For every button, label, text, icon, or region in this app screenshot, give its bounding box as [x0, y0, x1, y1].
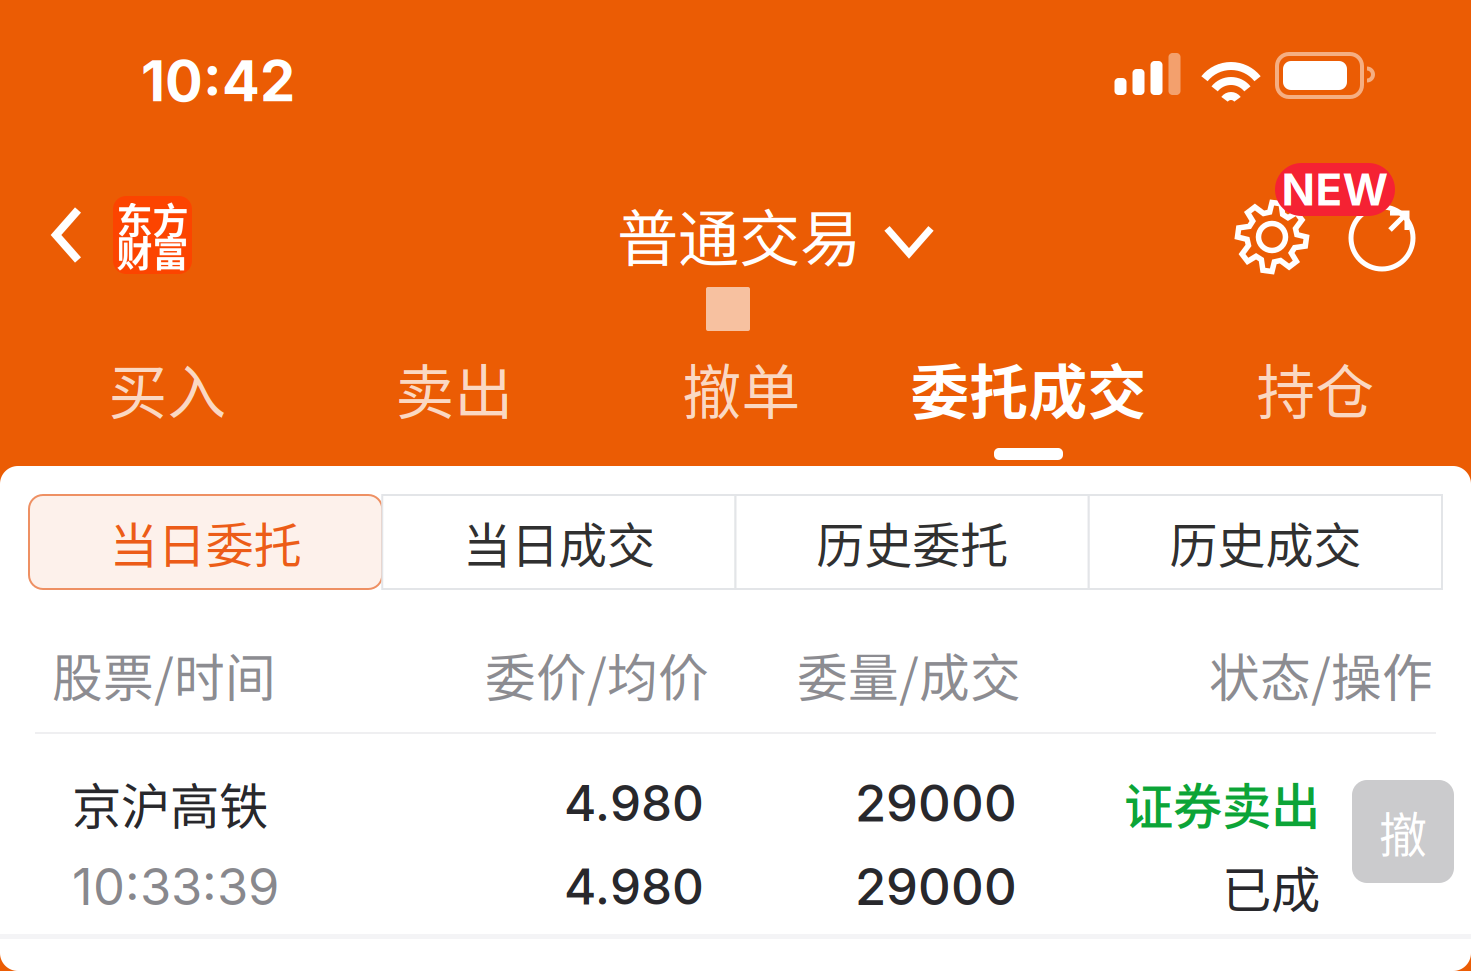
staticText: 京沪高铁	[72, 767, 268, 839]
staticText: 方	[152, 192, 188, 244]
staticText: 历史成交	[1169, 507, 1361, 577]
button[interactable]: New features	[1275, 130, 1417, 275]
button[interactable]: 持仓	[1172, 335, 1459, 466]
staticText: 29000	[855, 856, 1017, 917]
staticText: 证券卖出	[1124, 767, 1320, 839]
button[interactable]: 当日成交	[382, 495, 735, 589]
button[interactable]: Settings	[1235, 130, 1309, 282]
staticText: 卖出	[395, 346, 513, 431]
button[interactable]: 撤单	[598, 335, 885, 466]
staticText: NEW	[1281, 163, 1388, 216]
button[interactable]: 京沪高铁	[0, 734, 1471, 934]
staticText: 委量/成交	[797, 638, 1021, 711]
staticText: 撤	[1379, 797, 1427, 866]
button[interactable]: 委托成交	[885, 335, 1172, 466]
staticText: 4.980	[564, 857, 704, 916]
staticText: 东	[116, 192, 152, 244]
staticText: 已成	[1222, 851, 1320, 922]
staticText: 财	[116, 225, 152, 277]
button[interactable]: 卖出	[311, 335, 598, 466]
staticText: 买入	[108, 346, 226, 431]
staticText: 4.980	[564, 773, 704, 833]
staticText: 状态/操作	[1209, 638, 1433, 711]
staticText: 10:33:39	[72, 856, 279, 917]
staticText: 当日成交	[463, 507, 655, 577]
staticText: 10:42	[141, 47, 295, 115]
staticText: 当日委托	[110, 507, 302, 577]
staticText: 富	[152, 225, 188, 277]
staticText: 委托成交	[910, 346, 1146, 431]
button[interactable]: 历史成交	[1089, 495, 1442, 589]
staticText: 历史委托	[816, 507, 1008, 577]
button[interactable]: 当日委托	[29, 495, 382, 589]
button[interactable]: 历史委托	[735, 495, 1089, 589]
button[interactable]: Back	[0, 130, 192, 282]
button[interactable]: 买入	[24, 335, 311, 466]
staticText: 委价/均价	[485, 638, 709, 711]
staticText: 持仓	[1256, 346, 1374, 431]
staticText: 普通交易	[617, 190, 861, 279]
staticText: 股票/时间	[52, 638, 276, 711]
staticText: 撤单	[682, 346, 800, 431]
staticText: 29000	[855, 772, 1017, 834]
